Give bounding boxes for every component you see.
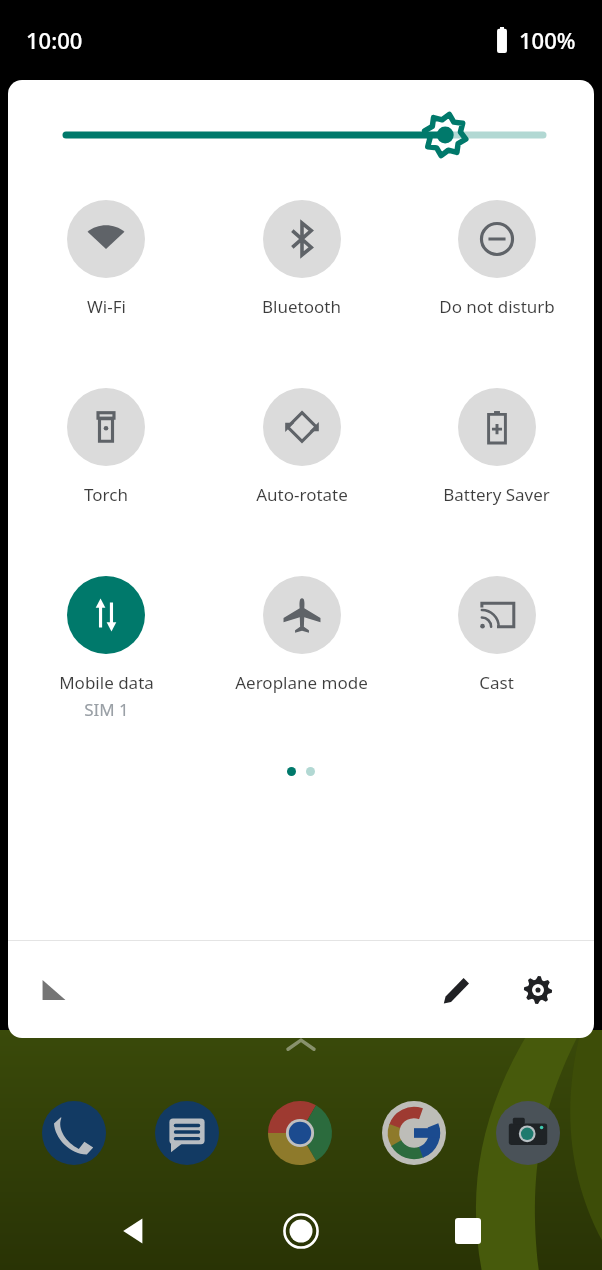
button[interactable]: Signal strength (30, 966, 78, 1014)
button[interactable]: Home (268, 1198, 334, 1264)
button[interactable]: Settings (512, 964, 564, 1016)
button[interactable]: Do not disturb (399, 196, 594, 322)
button[interactable]: Recent apps (435, 1198, 501, 1264)
button[interactable]: Brightness (8, 80, 594, 190)
staticText: SIM 1 (84, 698, 129, 721)
button[interactable]: Phone (33, 1092, 115, 1174)
staticText: Aeroplane mode (235, 671, 368, 694)
button[interactable]: Messages (146, 1092, 228, 1174)
staticText: Mobile data (59, 671, 154, 694)
staticText: Auto-rotate (256, 483, 348, 506)
staticText: Bluetooth (262, 295, 341, 318)
staticText: Cast (479, 671, 514, 694)
staticText: Do not disturb (439, 295, 555, 318)
button[interactable]: Mobile data (8, 572, 204, 725)
button[interactable]: Back (101, 1198, 167, 1264)
staticText: Battery Saver (443, 483, 550, 506)
button[interactable]: Bluetooth (204, 196, 399, 322)
button[interactable]: Edit (431, 964, 483, 1016)
button[interactable]: Aeroplane mode (204, 572, 399, 698)
button[interactable]: Wi-Fi (8, 196, 204, 322)
button[interactable]: Google (373, 1092, 455, 1174)
button[interactable]: Camera (487, 1092, 569, 1174)
staticText: Wi-Fi (87, 295, 126, 318)
button[interactable]: Chrome (259, 1092, 341, 1174)
staticText: 100% (519, 25, 576, 55)
staticText: Torch (84, 483, 128, 506)
button[interactable]: Cast (399, 572, 594, 698)
button[interactable]: Battery Saver (399, 384, 594, 510)
staticText: 10:00 (26, 25, 83, 55)
button[interactable]: Torch (8, 384, 204, 510)
button[interactable]: Auto-rotate (204, 384, 399, 510)
